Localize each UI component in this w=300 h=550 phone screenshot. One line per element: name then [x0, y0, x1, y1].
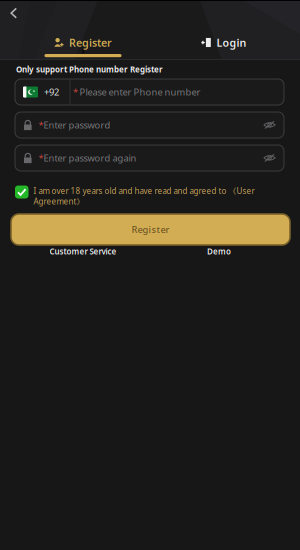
- staticText: *: [33, 152, 44, 164]
- staticText: *: [33, 119, 44, 131]
- staticText: Enter password again: [44, 152, 137, 164]
- staticText: Enter password: [44, 119, 111, 131]
- button[interactable]: Back: [0, 0, 28, 26]
- staticText: Please enter Phone number: [79, 86, 200, 98]
- staticText: Register: [69, 35, 112, 50]
- staticText: Only support Phone number Register: [16, 64, 163, 75]
- button[interactable]: Register: [8, 37, 158, 61]
- staticText: *: [73, 86, 78, 98]
- button[interactable]: I am over 18 years old and have read and…: [15, 185, 284, 211]
- staticText: Customer Service: [49, 246, 116, 257]
- staticText: Login: [216, 35, 246, 50]
- staticText: I am over 18 years old and have read and…: [33, 185, 254, 207]
- button[interactable]: Register: [11, 214, 290, 245]
- staticText: Register: [131, 223, 169, 236]
- staticText: Demo: [207, 246, 231, 257]
- staticText: +92: [38, 86, 59, 98]
- button[interactable]: Customer Service: [15, 245, 151, 258]
- button[interactable]: Login: [149, 36, 299, 48]
- button[interactable]: Demo: [151, 245, 287, 258]
